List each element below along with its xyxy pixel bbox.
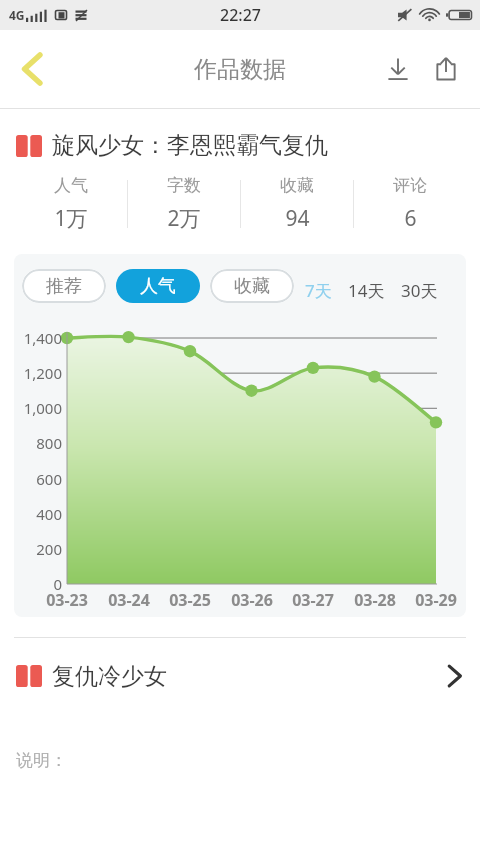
button[interactable]: 7天 (301, 279, 336, 302)
staticText: 收藏 (280, 175, 314, 196)
staticText: 6 (404, 204, 417, 233)
staticText: 30天 (401, 279, 438, 302)
button[interactable]: 字数 (128, 168, 240, 240)
staticText: 600 (36, 469, 62, 489)
staticText: 评论 (393, 175, 427, 196)
staticText: 03-26 (231, 589, 273, 611)
staticText: 400 (36, 504, 62, 524)
staticText: 03-28 (354, 589, 396, 611)
staticText: 0 (53, 574, 62, 594)
staticText: 22:27 (220, 4, 261, 26)
staticText: 2万 (167, 204, 201, 233)
staticText: 14天 (348, 279, 385, 302)
staticText: 800 (36, 433, 62, 453)
staticText: 复仇冷少女 (52, 662, 167, 691)
button[interactable]: 收藏 (241, 168, 353, 240)
staticText: 1万 (54, 204, 88, 233)
button[interactable]: Back (6, 43, 58, 95)
staticText: 说明： (16, 750, 67, 771)
staticText: 1,200 (23, 363, 62, 383)
staticText: 7天 (305, 279, 332, 302)
staticText: 94 (285, 204, 310, 233)
button[interactable]: 推荐 (22, 269, 106, 303)
staticText: 1,000 (23, 398, 62, 418)
button[interactable]: Share (424, 47, 468, 91)
staticText: 作品数据 (194, 55, 286, 84)
staticText: 03-23 (46, 589, 88, 611)
staticText: 1,400 (23, 328, 62, 348)
staticText: 收藏 (234, 275, 270, 298)
staticText: 03-29 (415, 589, 457, 611)
button[interactable]: 复仇冷少女 (0, 648, 480, 704)
staticText: 03-24 (108, 589, 150, 611)
staticText: 推荐 (46, 275, 82, 298)
staticText: 4G (9, 7, 25, 23)
button[interactable]: 旋风少女：李恩熙霸气复仇 (16, 131, 480, 160)
button[interactable]: 30天 (397, 279, 442, 302)
button[interactable]: 收藏 (210, 269, 294, 303)
button[interactable]: 14天 (344, 279, 389, 302)
staticText: 人气 (140, 275, 176, 298)
staticText: 旋风少女：李恩熙霸气复仇 (52, 131, 328, 160)
button[interactable]: 人气 (14, 168, 127, 240)
staticText: 200 (36, 539, 62, 559)
button[interactable]: Download (376, 47, 420, 91)
button[interactable]: 人气 (116, 269, 200, 303)
button[interactable]: 评论 (354, 168, 466, 240)
staticText: 03-25 (169, 589, 211, 611)
staticText: 03-27 (292, 589, 334, 611)
staticText: 字数 (167, 175, 201, 196)
staticText: 人气 (54, 175, 88, 196)
